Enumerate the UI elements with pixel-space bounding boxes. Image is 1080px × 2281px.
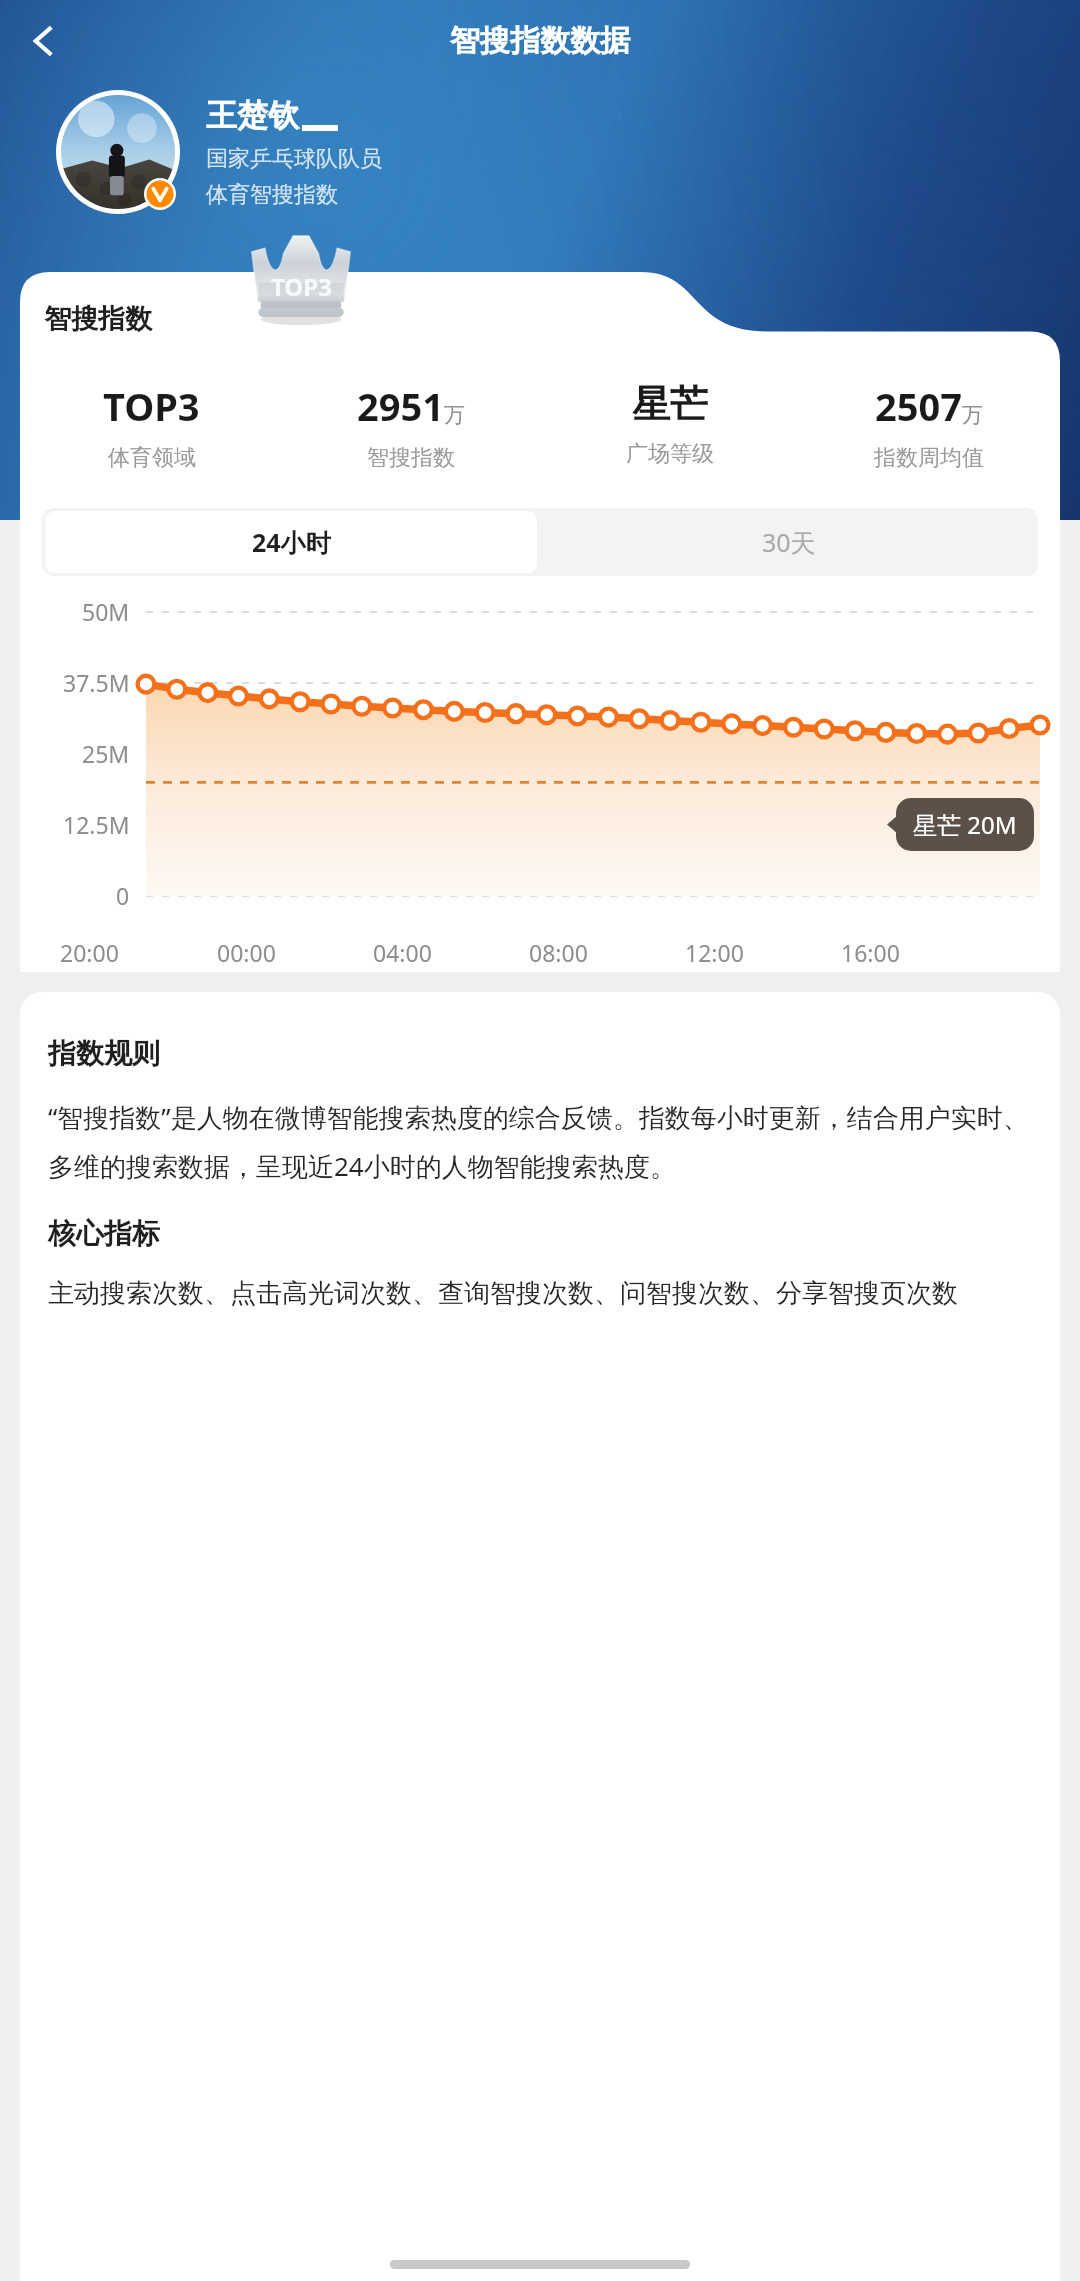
staticText: 智搜指数 bbox=[44, 302, 152, 336]
staticText: 星芒 20M bbox=[913, 808, 1017, 841]
staticText: 体育智搜指数 bbox=[206, 181, 338, 209]
button[interactable]: 王楚钦 bbox=[56, 90, 1080, 214]
button[interactable]: Back bbox=[12, 10, 74, 72]
staticText: 2951 bbox=[357, 380, 444, 432]
button[interactable]: 星芒 20M bbox=[896, 798, 1034, 851]
staticText: 30天 bbox=[762, 525, 816, 559]
button[interactable]: 30天 bbox=[540, 508, 1038, 576]
staticText: 广场等级 bbox=[626, 440, 714, 468]
staticText: 主动搜索次数、点击高光词次数、查询智搜次数、问智搜次数、分享智搜页次数 bbox=[48, 1277, 958, 1310]
staticText: 12:00 bbox=[685, 937, 744, 968]
staticText: 24小时 bbox=[252, 525, 331, 559]
staticText: 指数规则 bbox=[48, 1036, 160, 1071]
staticText: 0 bbox=[116, 880, 130, 911]
button[interactable]: TOP3 bbox=[22, 380, 281, 472]
staticText: 智搜指数 bbox=[367, 444, 455, 472]
staticText: 王楚钦 bbox=[206, 96, 299, 135]
staticText: 20:00 bbox=[60, 937, 119, 968]
staticText: 04:00 bbox=[373, 937, 432, 968]
staticText: 12.5M bbox=[63, 809, 130, 840]
button[interactable]: 2951 bbox=[281, 380, 540, 472]
staticText: “智搜指数”是人物在微博智能搜索热度的综合反馈。指数每小时更新，结合用户实时、多… bbox=[48, 1099, 1036, 1184]
staticText: TOP3 bbox=[271, 270, 332, 303]
staticText: 50M bbox=[82, 596, 130, 627]
button[interactable]: 24小时 bbox=[45, 511, 537, 573]
staticText: 00:00 bbox=[217, 937, 276, 968]
button[interactable]: 2507 bbox=[799, 380, 1058, 472]
staticText: 16:00 bbox=[841, 937, 900, 968]
staticText: 智搜指数数据 bbox=[450, 22, 630, 60]
staticText: 2507 bbox=[875, 380, 962, 432]
staticText: 体育领域 bbox=[108, 444, 196, 472]
staticText: 星芒 bbox=[632, 380, 708, 428]
button[interactable]: 星芒 bbox=[540, 380, 799, 468]
staticText: 08:00 bbox=[529, 937, 588, 968]
staticText: 25M bbox=[82, 738, 130, 769]
staticText: 万 bbox=[962, 402, 983, 428]
staticText: 指数周均值 bbox=[874, 444, 984, 472]
staticText: 国家乒乓球队队员 bbox=[206, 145, 382, 173]
staticText: 37.5M bbox=[63, 667, 130, 698]
staticText: 万 bbox=[444, 402, 465, 428]
staticText: 核心指标 bbox=[48, 1216, 160, 1251]
staticText: TOP3 bbox=[103, 380, 200, 432]
